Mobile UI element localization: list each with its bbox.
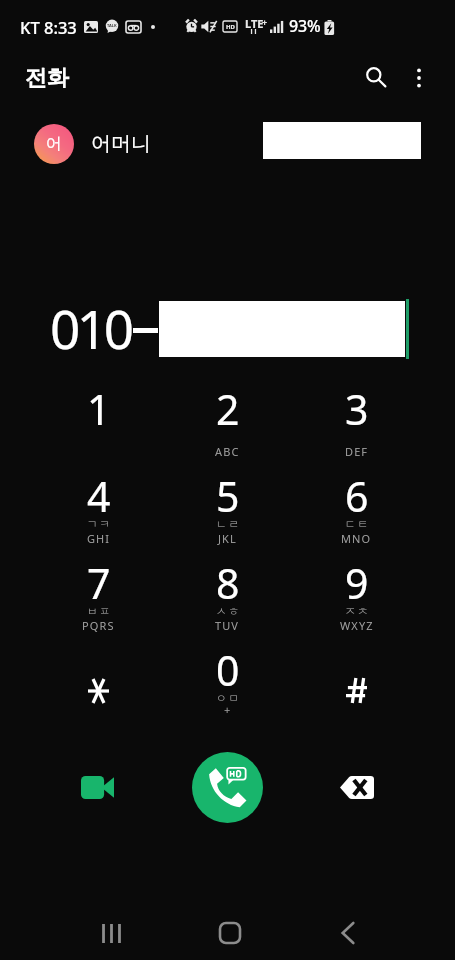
button[interactable]: 3	[292, 370, 421, 457]
staticText: TALK	[107, 23, 117, 28]
staticText: 93%	[289, 15, 321, 37]
button[interactable]: 6	[292, 457, 421, 544]
button[interactable]: Home	[206, 909, 254, 957]
staticText: TUV	[215, 618, 240, 633]
button[interactable]	[34, 631, 163, 718]
staticText: WXYZ	[340, 618, 374, 633]
button[interactable]: 1	[34, 370, 163, 457]
staticText: 010	[50, 292, 131, 364]
staticText: 7	[87, 555, 111, 611]
staticText: 5	[216, 468, 240, 524]
staticText: ABC	[215, 444, 240, 459]
staticText: 4	[87, 468, 111, 524]
staticText: ㄴㄹ	[215, 517, 240, 531]
staticText: ㅅㅎ	[215, 604, 240, 618]
button[interactable]: 어	[34, 124, 74, 164]
staticText: 어머니	[91, 131, 151, 156]
staticText: PQRS	[82, 618, 115, 633]
button[interactable]: Backspace	[327, 757, 387, 817]
button[interactable]: Search	[352, 53, 400, 101]
staticText: MNO	[341, 531, 372, 546]
button[interactable]: 9	[292, 544, 421, 631]
staticText: ㅂㅍ	[86, 604, 111, 618]
staticText: ㅇㅁ	[215, 691, 240, 705]
staticText: LTE	[245, 16, 264, 31]
staticText: 6	[345, 468, 369, 524]
button[interactable]: 8	[163, 544, 292, 631]
staticText: 어	[46, 134, 62, 154]
staticText: +	[224, 702, 232, 717]
staticText: 0	[216, 642, 240, 698]
staticText: KT 8:33	[20, 16, 77, 38]
button[interactable]: Video call	[68, 757, 128, 817]
staticText: JKL	[218, 531, 237, 546]
staticText: ㄷㅌ	[344, 517, 369, 531]
button[interactable]: 4	[34, 457, 163, 544]
button[interactable]: More options	[396, 55, 442, 101]
button[interactable]: 0	[163, 631, 292, 718]
button[interactable]: 2	[163, 370, 292, 457]
staticText: GHI	[87, 531, 111, 546]
staticText: ㄱㅋ	[86, 517, 111, 531]
button[interactable]: 7	[34, 544, 163, 631]
staticText: 3	[345, 381, 369, 437]
button[interactable]	[292, 631, 421, 718]
staticText: 9	[345, 555, 369, 611]
staticText: HD	[226, 23, 235, 31]
button[interactable]: Call	[192, 752, 263, 823]
staticText: ㅈㅊ	[344, 604, 369, 618]
staticText: DEF	[345, 444, 369, 459]
button[interactable]: Back	[324, 909, 372, 957]
staticText: +	[262, 16, 268, 28]
staticText: 2	[216, 381, 240, 437]
button[interactable]: 5	[163, 457, 292, 544]
button[interactable]: Recents	[87, 909, 135, 957]
staticText: 전화	[25, 64, 69, 92]
staticText: 1	[87, 381, 111, 437]
staticText: 8	[216, 555, 240, 611]
